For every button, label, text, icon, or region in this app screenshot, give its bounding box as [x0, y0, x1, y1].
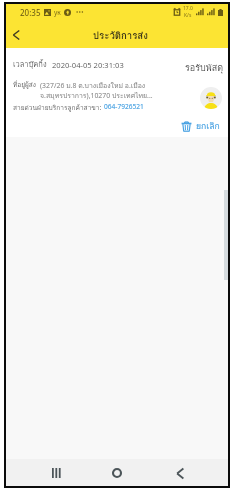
button[interactable]: ยกเลิก [181, 119, 220, 133]
button[interactable]: Recents [43, 461, 67, 485]
staticText: 17.0 [183, 5, 193, 12]
staticText: ук [54, 8, 61, 17]
staticText: 064-7926521 [104, 102, 144, 111]
button[interactable]: Back [168, 461, 192, 485]
staticText: 2020-04-05 20:31:03 [52, 60, 124, 70]
staticText: ประวัติการส่ง [93, 28, 148, 43]
button[interactable]: Back [6, 24, 27, 45]
staticText: เวลาบุ๊คกิ้ง [13, 58, 47, 70]
staticText: สายด่วนฝ่ายบริการลูกค้าสาขา: [13, 102, 104, 112]
button[interactable]: Home [105, 461, 129, 485]
staticText: ที่อยู่ผู้ส่ง [13, 80, 36, 90]
staticText: 20:35 [20, 7, 41, 18]
staticText: (327/26 ม.8 ต.บางเมืองใหม่ อ.เมือง จ.สมุ… [40, 80, 153, 101]
staticText: K/s [184, 12, 192, 19]
staticText: รอรับพัสดุ [185, 61, 224, 75]
staticText: ยกเลิก [196, 119, 220, 133]
